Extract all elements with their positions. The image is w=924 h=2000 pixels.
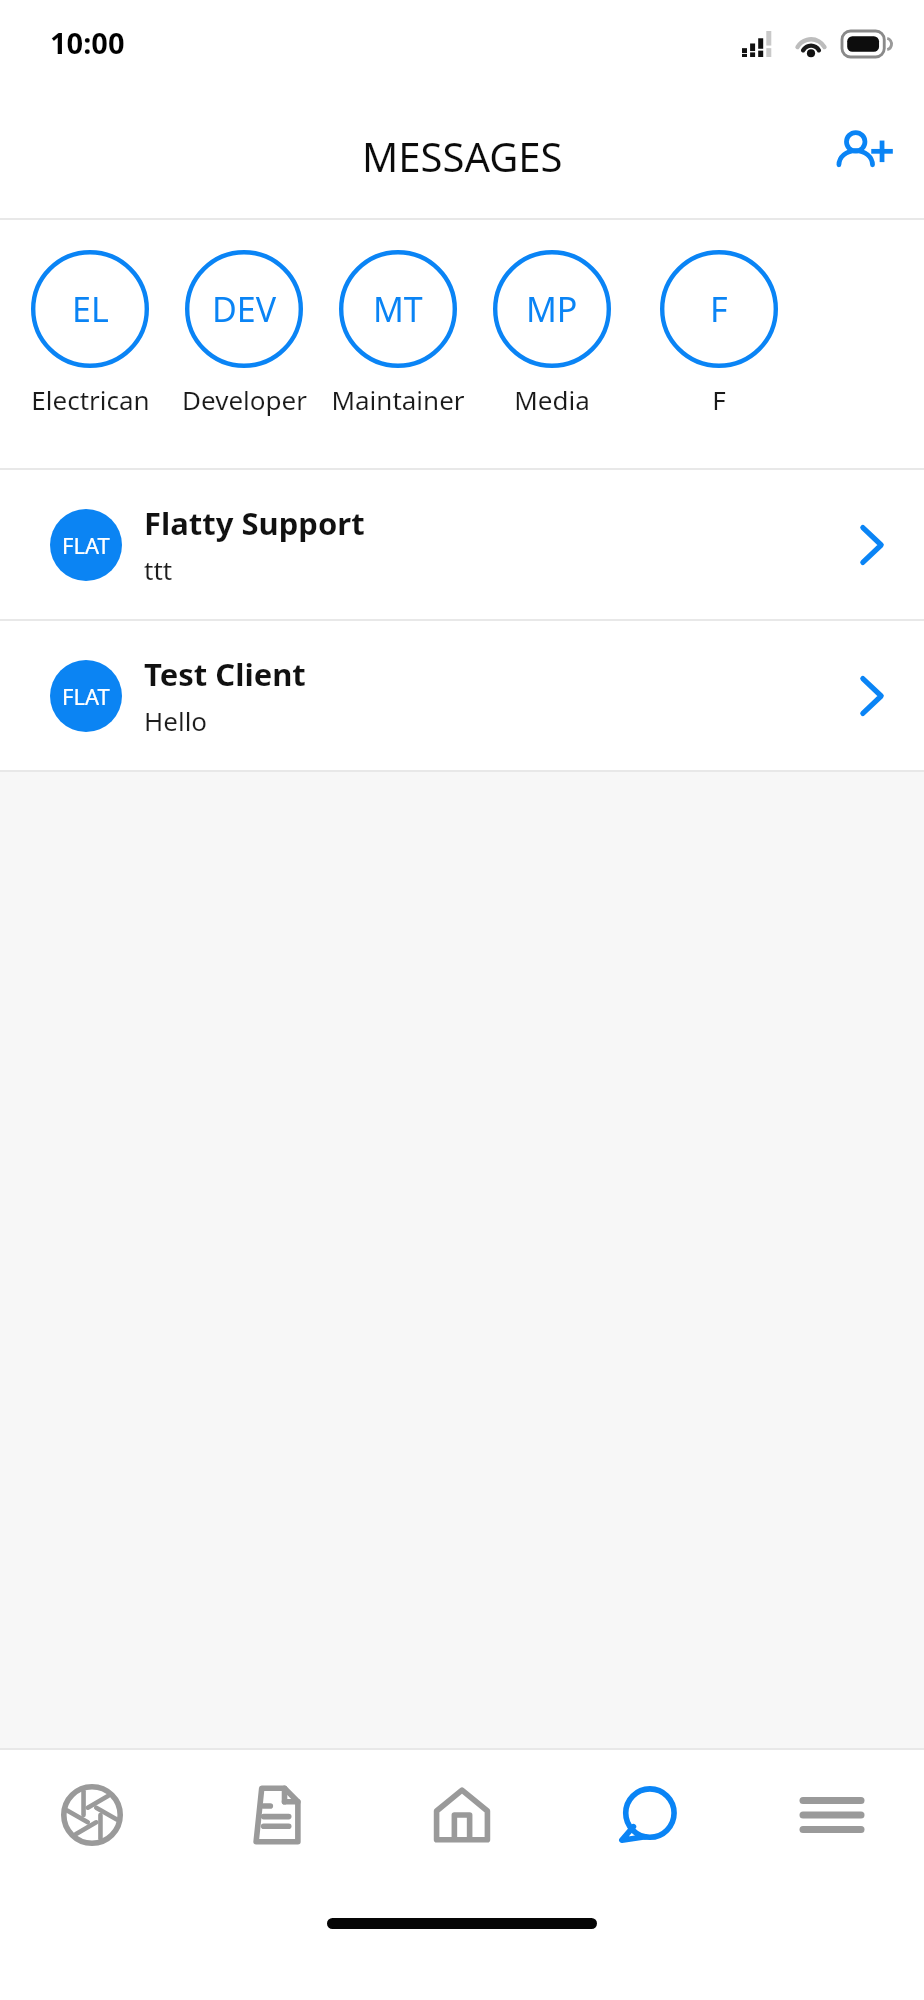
staticText: FLAT — [62, 681, 110, 711]
staticText: Test Client — [144, 653, 306, 695]
staticText: Hello — [144, 703, 208, 738]
staticText: 10:00 — [50, 23, 125, 62]
staticText: Flatty Support — [144, 502, 365, 544]
button[interactable]: Add contact — [820, 110, 906, 196]
staticText: Developer — [182, 382, 307, 417]
staticText: F — [712, 382, 726, 417]
staticText: Media Provider — [475, 382, 629, 417]
button[interactable]: Camera — [0, 1750, 184, 1880]
staticText: ttt — [144, 552, 173, 587]
button[interactable]: Menu — [739, 1750, 924, 1880]
staticText: EL — [72, 286, 109, 332]
button[interactable]: Messages — [554, 1750, 739, 1880]
button[interactable]: MT — [321, 220, 475, 417]
staticText: MP — [526, 286, 578, 332]
button[interactable]: MP — [475, 220, 629, 417]
button[interactable]: Home — [369, 1750, 554, 1880]
staticText: FLAT — [62, 530, 110, 560]
button[interactable]: DEV — [167, 220, 321, 417]
staticText: DEV — [212, 286, 277, 332]
button[interactable]: EL — [13, 220, 167, 417]
button[interactable]: FLAT — [0, 470, 924, 619]
staticText: MESSAGES — [362, 129, 563, 183]
staticText: F — [710, 286, 728, 332]
button[interactable]: F — [629, 220, 809, 417]
staticText: MT — [373, 286, 423, 332]
staticText: Maintainer — [331, 382, 465, 417]
button[interactable]: FLAT — [0, 621, 924, 770]
staticText: Electrican — [31, 382, 150, 417]
button[interactable]: Documents — [184, 1750, 369, 1880]
